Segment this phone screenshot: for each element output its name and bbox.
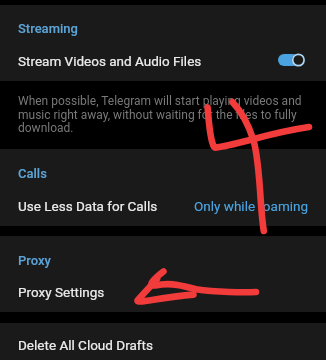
staticText: Delete All Cloud Drafts xyxy=(18,337,153,353)
button[interactable]: Stream Videos and Audio Files xyxy=(0,42,326,80)
staticText: Proxy xyxy=(18,253,51,268)
staticText: Use Less Data for Calls xyxy=(18,198,158,214)
button[interactable]: Delete All Cloud Drafts xyxy=(0,328,326,360)
staticText: Stream Videos and Audio Files xyxy=(18,53,202,69)
other: Stream Videos and Audio Files toggle xyxy=(278,52,305,68)
staticText: Proxy Settings xyxy=(18,284,105,300)
staticText: Calls xyxy=(18,166,47,181)
staticText: When possible, Telegram will start playi… xyxy=(18,94,302,134)
button[interactable]: Use Less Data for Calls xyxy=(0,187,326,225)
button[interactable]: Proxy Settings xyxy=(0,273,326,311)
staticText: Streaming xyxy=(18,21,78,36)
staticText: Only while roaming xyxy=(194,198,309,214)
